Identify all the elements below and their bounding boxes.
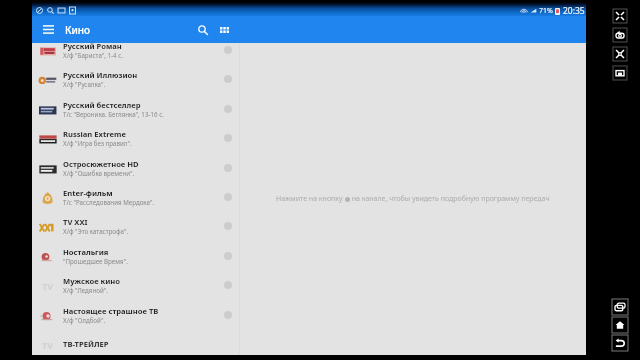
staticText: Х/ф "Бариста", 1-4 с. xyxy=(63,51,123,59)
button[interactable]: Show program for Русский Роман xyxy=(218,43,238,60)
button[interactable]: Search xyxy=(191,18,215,42)
button[interactable]: Show program for TV XXI xyxy=(218,216,238,236)
button[interactable]: Show program for Русский Иллюзион xyxy=(218,69,238,89)
staticText: Нажмите на кнопку xyxy=(276,194,345,204)
staticText: Х/ф "Олдбой". xyxy=(63,316,106,324)
button[interactable]: Resize xyxy=(613,47,627,61)
staticText: Т/с "Вероника. Беглянка", 13-16 с. xyxy=(63,110,164,118)
staticText: TV xyxy=(42,339,54,351)
button[interactable]: Recent apps xyxy=(612,299,628,315)
button[interactable]: Русский Иллюзион xyxy=(32,64,239,94)
staticText: Enter-фильм xyxy=(63,188,113,198)
staticText: Ностальгия xyxy=(63,247,109,257)
button[interactable]: Show program for Русский бестселлер xyxy=(218,99,238,119)
staticText: 20:35 xyxy=(563,5,585,16)
button[interactable]: Русский бестселлер xyxy=(32,94,239,124)
button[interactable]: Enter-фильм xyxy=(32,182,239,212)
button[interactable]: Grid view xyxy=(212,18,236,42)
button[interactable]: Screenshot xyxy=(613,28,627,42)
button[interactable]: Show program for Russian Extreme xyxy=(218,128,238,148)
button[interactable]: Show program for Мужское кино xyxy=(218,275,238,295)
button[interactable]: Collapse xyxy=(613,9,627,23)
button[interactable]: Save xyxy=(613,66,627,80)
button[interactable]: Show program for Настоящее страшное ТВ xyxy=(218,305,238,325)
button[interactable]: Back xyxy=(612,335,628,351)
button[interactable]: Ностальгия xyxy=(32,241,239,271)
button[interactable]: Open navigation menu xyxy=(35,16,62,43)
button[interactable]: TV xyxy=(32,270,239,300)
staticText: Х/ф "Игра без правил". xyxy=(63,139,132,147)
staticText: Русский бестселлер xyxy=(63,100,141,110)
staticText: Настоящее страшное ТВ xyxy=(63,306,159,316)
button[interactable]: Russian Extreme xyxy=(32,123,239,153)
button[interactable]: TV xyxy=(32,329,239,355)
staticText: Остросюжетное HD xyxy=(63,159,139,169)
staticText: "Прошедшее Время". xyxy=(63,257,128,265)
staticText: Х/ф "Русалка". xyxy=(63,80,106,88)
staticText: ТВ-ТРЕЙЛЕР xyxy=(63,339,109,349)
staticText: Кино xyxy=(65,23,91,37)
staticText: на канале, чтобы увидеть подробную прогр… xyxy=(350,194,550,204)
staticText: Русский Роман xyxy=(63,43,122,51)
staticText: Русский Иллюзион xyxy=(63,70,138,80)
staticText: Х/ф "Это катастрофа". xyxy=(63,227,129,235)
button[interactable]: Home xyxy=(612,317,628,333)
staticText: Т/с "Расследования Мердока". xyxy=(63,198,155,206)
button[interactable]: TV XXI xyxy=(32,211,239,241)
staticText: TV XXI xyxy=(63,217,88,227)
staticText: TV xyxy=(42,280,54,292)
button[interactable]: Show program for Остросюжетное HD xyxy=(218,158,238,178)
button[interactable]: Show program for Ностальгия xyxy=(218,246,238,266)
staticText: Х/ф "Ледяной". xyxy=(63,286,108,294)
button[interactable]: Show program for Enter-фильм xyxy=(218,187,238,207)
button[interactable]: Настоящее страшное ТВ xyxy=(32,300,239,330)
staticText: 71% xyxy=(539,6,553,16)
staticText: Х/ф "Ошибка времени". xyxy=(63,169,135,177)
staticText: Russian Extreme xyxy=(63,129,126,139)
button[interactable]: Русский Роман xyxy=(32,43,239,65)
staticText: Мужское кино xyxy=(63,276,121,286)
button[interactable]: Остросюжетное HD xyxy=(32,153,239,183)
